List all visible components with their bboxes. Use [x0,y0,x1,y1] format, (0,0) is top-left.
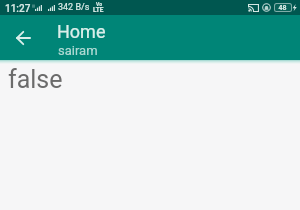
staticText: 11:27 [5,3,31,15]
staticText: 342 B/s [58,2,90,13]
staticText: false [8,65,63,94]
staticText: sairam [58,43,98,58]
button[interactable]: Home [47,20,116,56]
staticText: 48 [278,4,287,11]
staticText: LTE [93,6,104,14]
button[interactable]: Navigate up [0,15,47,60]
staticText: Home [57,21,106,42]
staticText: Vo [96,1,102,7]
